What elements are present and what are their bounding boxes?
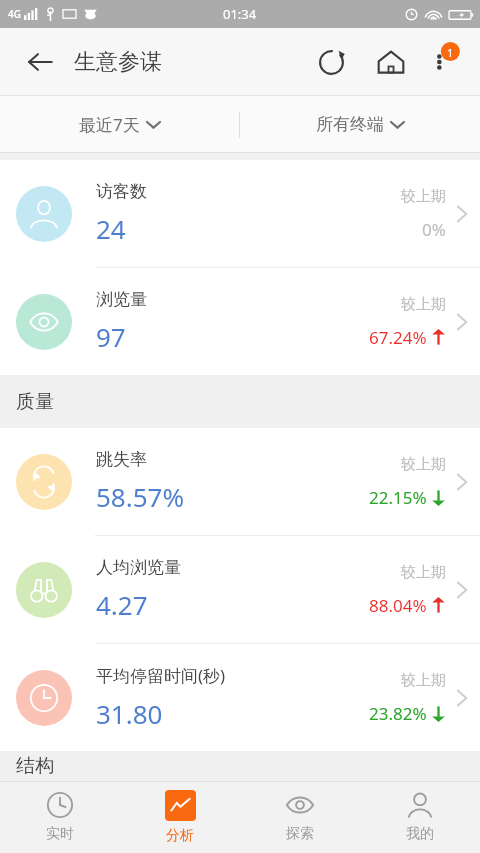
- button[interactable]: 跳失率: [0, 428, 480, 535]
- staticText: 1: [447, 45, 454, 60]
- staticText: 较上期: [401, 295, 446, 314]
- staticText: 22.15%: [369, 486, 427, 509]
- staticText: 浏览量: [96, 289, 147, 310]
- button[interactable]: 实时: [0, 781, 120, 853]
- staticText: 访客数: [96, 181, 147, 202]
- staticText: 较上期: [401, 187, 446, 206]
- staticText: 24: [96, 211, 126, 246]
- staticText: 97: [96, 319, 126, 354]
- button[interactable]: 探索: [240, 781, 360, 853]
- staticText: 生意参谋: [74, 48, 162, 76]
- staticText: 88.04%: [369, 594, 427, 617]
- staticText: 0%: [422, 218, 446, 241]
- staticText: 人均浏览量: [96, 557, 181, 578]
- staticText: 较上期: [401, 455, 446, 474]
- staticText: 结构: [16, 754, 54, 778]
- button[interactable]: 我的: [360, 781, 480, 853]
- staticText: 所有终端: [316, 114, 384, 135]
- staticText: 01:34: [223, 5, 257, 23]
- staticText: 67.24%: [369, 326, 427, 349]
- staticText: 探索: [286, 825, 314, 843]
- button[interactable]: 人均浏览量: [0, 536, 480, 643]
- staticText: 4.27: [96, 587, 148, 622]
- staticText: 平均停留时间(秒): [96, 664, 226, 687]
- button[interactable]: 浏览量: [0, 268, 480, 375]
- staticText: 实时: [46, 825, 74, 843]
- staticText: 较上期: [401, 671, 446, 690]
- staticText: 质量: [16, 390, 54, 414]
- button[interactable]: Refresh: [308, 39, 354, 85]
- staticText: 最近7天: [79, 113, 140, 136]
- button[interactable]: Back: [20, 42, 60, 82]
- staticText: 我的: [406, 825, 434, 843]
- staticText: 31.80: [96, 696, 163, 731]
- button[interactable]: 分析: [120, 781, 240, 853]
- staticText: 分析: [166, 827, 194, 845]
- staticText: 跳失率: [96, 449, 147, 470]
- staticText: 4G: [8, 7, 21, 21]
- staticText: 58.57%: [96, 479, 185, 514]
- staticText: 23.82%: [369, 702, 427, 725]
- button[interactable]: More options: [420, 39, 466, 85]
- button[interactable]: 所有终端: [240, 96, 480, 153]
- button[interactable]: Home: [368, 39, 414, 85]
- button[interactable]: 平均停留时间(秒): [0, 644, 480, 751]
- button[interactable]: 访客数: [0, 160, 480, 267]
- button[interactable]: 最近7天: [0, 96, 239, 153]
- staticText: 较上期: [401, 563, 446, 582]
